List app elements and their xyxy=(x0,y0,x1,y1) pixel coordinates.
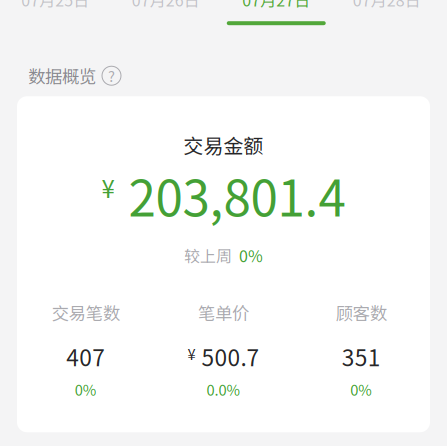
staticText: 数据概览 xyxy=(28,63,96,88)
staticText: 0% xyxy=(239,244,263,267)
staticText: 07月26日 xyxy=(132,0,200,11)
button[interactable]: 07月28日 xyxy=(331,0,442,25)
staticText: 交易金额 xyxy=(183,130,263,159)
staticText: 较上周 xyxy=(184,244,232,267)
staticText: 顾客数 xyxy=(336,300,387,325)
staticText: 07月27日 xyxy=(242,0,310,11)
staticText: 0.0% xyxy=(206,379,240,400)
button[interactable]: 07月25日 xyxy=(0,0,110,25)
staticText: 07月25日 xyxy=(21,0,89,11)
staticText: ? xyxy=(108,65,115,86)
staticText: 07月28日 xyxy=(353,0,421,11)
staticText: 500.7 xyxy=(201,340,259,373)
button[interactable]: 07月27日 xyxy=(221,0,331,25)
button[interactable]: 07月26日 xyxy=(110,0,221,25)
staticText: ¥ xyxy=(101,170,114,205)
staticText: 203,801.4 xyxy=(128,159,345,231)
staticText: 407 xyxy=(66,340,105,373)
staticText: 0% xyxy=(350,379,372,400)
staticText: 笔单价 xyxy=(198,300,249,325)
staticText: ¥ xyxy=(187,343,195,364)
staticText: 0% xyxy=(75,379,97,400)
staticText: 351 xyxy=(342,340,381,373)
button[interactable]: Help xyxy=(101,65,122,86)
staticText: 交易笔数 xyxy=(52,300,120,325)
